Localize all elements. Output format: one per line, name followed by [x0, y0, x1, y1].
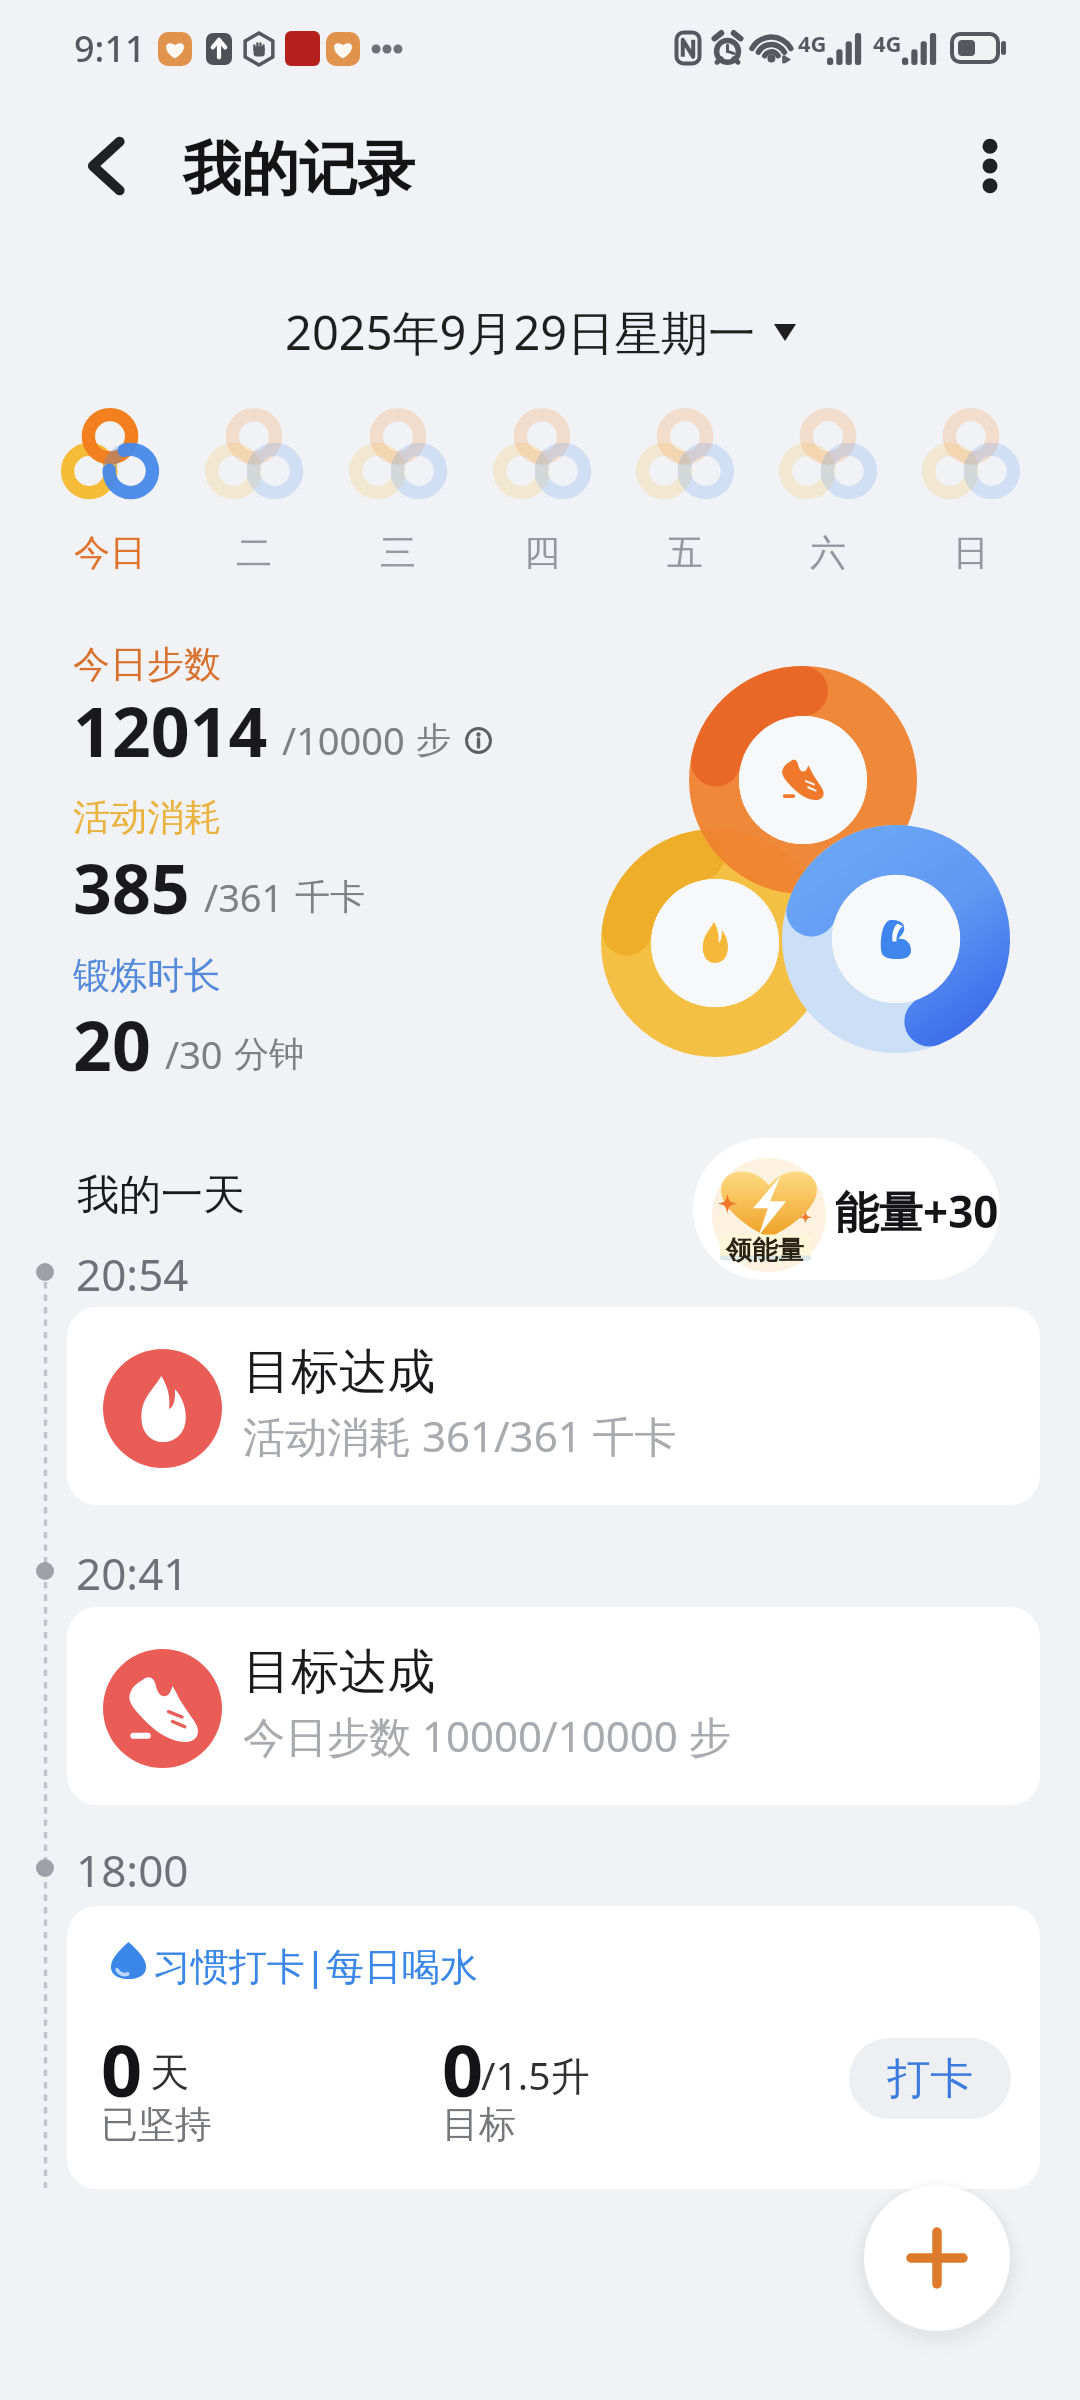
staticText: 打卡 — [887, 2052, 973, 2106]
staticText: 目标 — [442, 2101, 516, 2148]
staticText: 20:54 — [76, 1244, 189, 1304]
staticText: 4G — [798, 28, 827, 58]
staticText: 0 — [101, 2020, 143, 2118]
staticText: /361 — [204, 871, 284, 923]
staticText: 锻炼时长 — [73, 952, 221, 999]
staticText: 12014 — [73, 684, 268, 777]
staticText: /10000 — [282, 714, 405, 766]
staticText: 9:11 — [74, 24, 146, 73]
staticText: 能量+30 — [835, 1181, 1000, 1241]
button[interactable]: Back — [62, 120, 154, 212]
button[interactable]: Add record — [864, 2185, 1010, 2331]
staticText: /30 — [165, 1028, 223, 1080]
button[interactable]: 习惯打卡|每日喝水 — [67, 1906, 1040, 2189]
staticText: 18:00 — [76, 1840, 189, 1900]
button[interactable]: 五 — [613, 408, 756, 575]
staticText: 天 — [150, 2048, 189, 2097]
staticText: 分钟 — [234, 1032, 304, 1076]
button[interactable]: 领能量 — [693, 1138, 1000, 1280]
staticText: 我的记录 — [183, 133, 415, 206]
staticText: 20 — [73, 998, 151, 1091]
staticText: 日 — [953, 530, 989, 575]
button[interactable]: 二 — [182, 408, 326, 575]
button[interactable]: 今日 — [38, 408, 182, 575]
button[interactable]: 2025年9月29日星期一 — [277, 294, 804, 370]
staticText: 活动消耗 — [73, 794, 221, 841]
staticText: 4G — [873, 28, 902, 58]
staticText: 已坚持 — [101, 2101, 212, 2148]
staticText: 我的一天 — [77, 1169, 245, 1222]
staticText: 二 — [236, 530, 272, 575]
button[interactable]: 目标达成 — [67, 1307, 1040, 1505]
staticText: /1.5升 — [481, 2048, 590, 2101]
staticText: 目标达成 — [243, 1642, 435, 1702]
button[interactable]: 四 — [470, 408, 613, 575]
staticText: 385 — [73, 841, 190, 934]
button[interactable]: 三 — [326, 408, 470, 575]
staticText: 五 — [667, 530, 703, 575]
staticText: 四 — [524, 530, 560, 575]
staticText: 习惯打卡|每日喝水 — [153, 1939, 478, 1991]
button[interactable]: 日 — [899, 408, 1042, 575]
staticText: 目标达成 — [243, 1342, 435, 1402]
staticText: 领能量 — [726, 1234, 826, 1267]
staticText: 千卡 — [295, 875, 365, 919]
staticText: 活动消耗 361/361 千卡 — [243, 1407, 677, 1464]
button[interactable]: 目标达成 — [67, 1607, 1040, 1805]
button[interactable]: 打卡 — [849, 2038, 1011, 2119]
staticText: 今日 — [74, 530, 146, 575]
staticText: 步 — [416, 718, 451, 762]
staticText: 0 — [442, 2020, 484, 2118]
staticText: 今日步数 10000/10000 步 — [243, 1707, 731, 1764]
staticText: 20:41 — [76, 1543, 189, 1603]
staticText: 六 — [810, 530, 846, 575]
button[interactable]: More options — [944, 120, 1036, 212]
button[interactable]: 六 — [756, 408, 899, 575]
staticText: 今日步数 — [73, 641, 221, 688]
staticText: 2025年9月29日星期一 — [285, 300, 756, 364]
staticText: 三 — [380, 530, 416, 575]
